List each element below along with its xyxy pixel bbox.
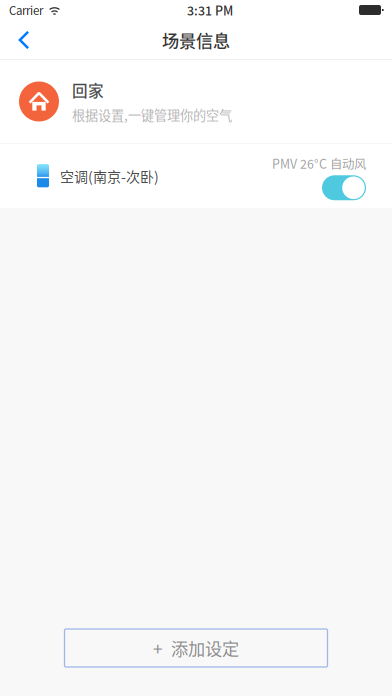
staticText: Carrier [9,2,43,18]
staticText: + 添加设定 [153,635,239,660]
staticText: PMV 26°C 自动风 [272,154,366,172]
staticText: 场景信息 [162,27,230,52]
button[interactable]: + 添加设定 [64,629,327,667]
staticText: 回家 [72,79,104,101]
button[interactable]: 空调(南京-次卧) [0,144,392,208]
staticText: 空调(南京-次卧) [60,166,159,186]
staticText: 3:31 PM [187,1,233,19]
button[interactable]: 回家 [0,60,392,143]
staticText: 根据设置,一键管理你的空气 [72,105,232,124]
button[interactable]: Back [2,20,46,60]
